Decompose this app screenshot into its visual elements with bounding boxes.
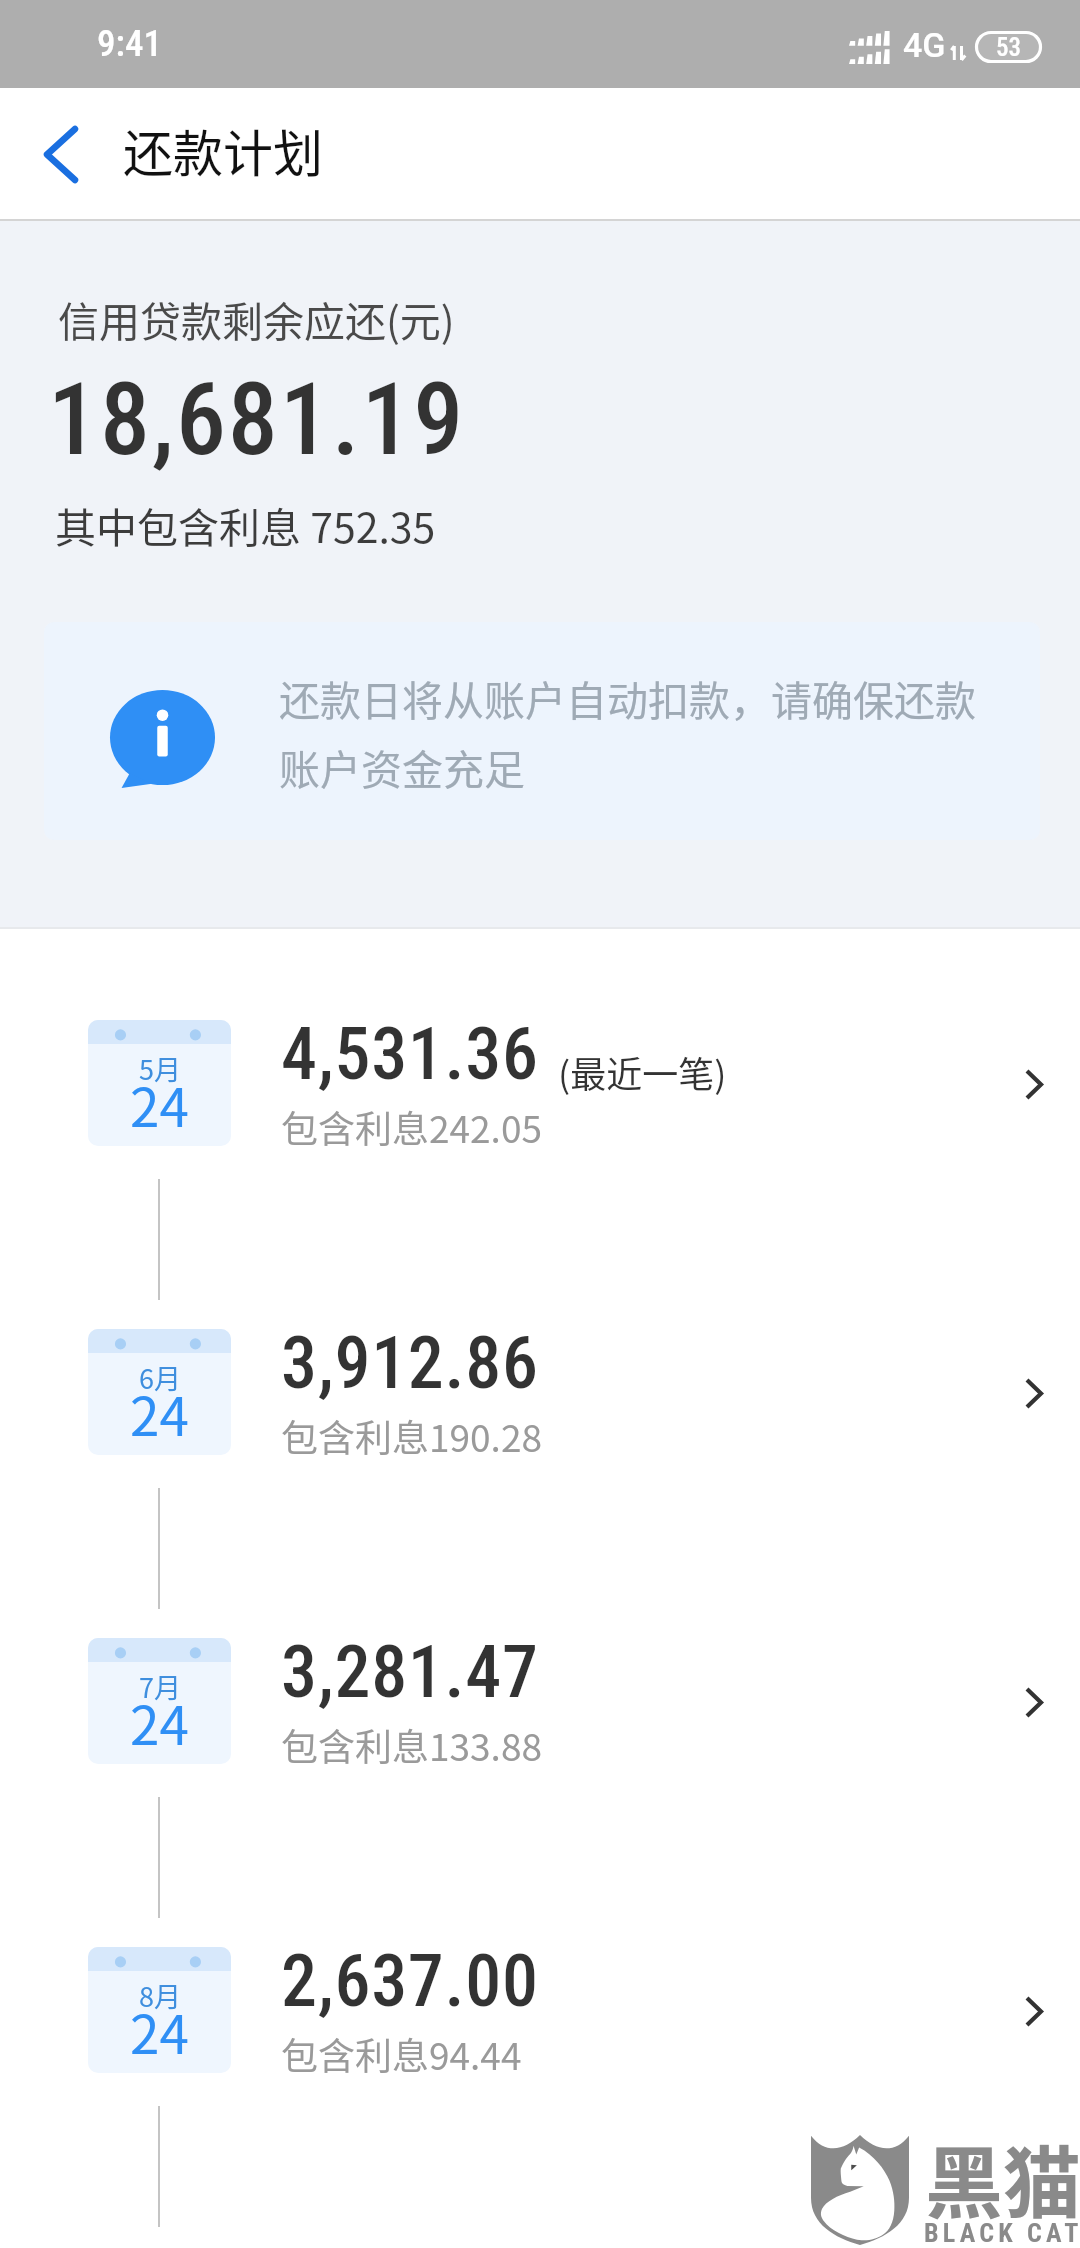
button[interactable]: Back bbox=[6, 88, 116, 221]
staticText: 4,531.36 bbox=[281, 1012, 539, 1096]
staticText: 包含利息190.28 bbox=[281, 1409, 542, 1463]
staticText: 18,681.19 bbox=[48, 361, 466, 478]
staticText: 8月 bbox=[139, 1976, 181, 2015]
button[interactable]: 6月 bbox=[0, 1303, 1080, 1481]
staticText: 7月 bbox=[139, 1667, 181, 1706]
staticText: 24 bbox=[130, 1375, 189, 1452]
staticText: 还款计划 bbox=[123, 114, 323, 186]
staticText: 包含利息133.88 bbox=[281, 1718, 542, 1772]
button[interactable]: 5月 bbox=[0, 994, 1080, 1172]
staticText: 4G bbox=[903, 25, 946, 65]
staticText: 9:41 bbox=[97, 22, 162, 65]
staticText: 24 bbox=[130, 1066, 189, 1143]
staticText: 2,637.00 bbox=[281, 1939, 539, 2023]
staticText: 24 bbox=[130, 1684, 189, 1761]
staticText: 24 bbox=[130, 1993, 189, 2070]
staticText: 信用贷款剩余应还(元) bbox=[58, 289, 455, 348]
staticText: 黑猫 bbox=[925, 2122, 1080, 2235]
other: Open detail bbox=[988, 1038, 1080, 1130]
staticText: 5月 bbox=[139, 1049, 181, 1088]
staticText: BLACK CAT bbox=[924, 2218, 1080, 2248]
other: Open detail bbox=[988, 1656, 1080, 1748]
staticText: 6月 bbox=[139, 1358, 181, 1397]
other: Open detail bbox=[988, 1347, 1080, 1439]
button[interactable]: 7月 bbox=[0, 1612, 1080, 1790]
staticText: 包含利息94.44 bbox=[281, 2027, 522, 2081]
staticText: 还款日将从账户自动扣款，请确保还款账户资金充足 bbox=[279, 668, 991, 797]
staticText: 3,912.86 bbox=[281, 1321, 539, 1405]
staticText: 3,281.47 bbox=[281, 1630, 539, 1714]
staticText: 包含利息242.05 bbox=[281, 1100, 542, 1154]
staticText: (最近一笔) bbox=[558, 1046, 727, 1098]
staticText: 其中包含利息 752.35 bbox=[55, 495, 436, 554]
staticText: 53 bbox=[996, 33, 1021, 62]
other: Open detail bbox=[988, 1965, 1080, 2057]
button[interactable]: 8月 bbox=[0, 1921, 1080, 2099]
